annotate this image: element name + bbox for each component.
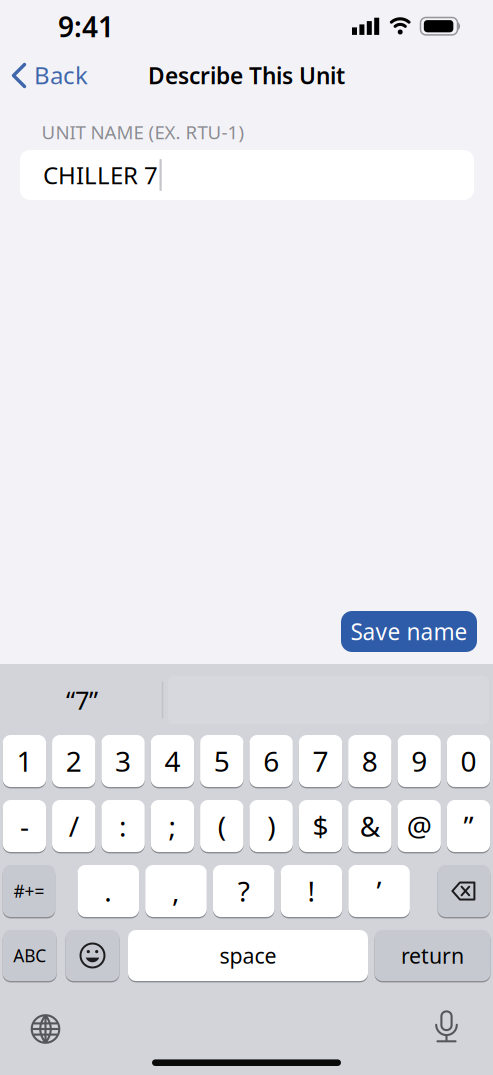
button[interactable]: Dictation: [424, 1005, 468, 1049]
staticText: $: [312, 807, 328, 845]
staticText: ”: [464, 807, 474, 845]
staticText: !: [307, 872, 315, 910]
staticText: return: [401, 941, 464, 970]
staticText: Save name: [350, 616, 467, 646]
button[interactable]: Back: [10, 57, 102, 93]
button[interactable]: space: [128, 930, 368, 981]
staticText: .: [104, 872, 112, 910]
staticText: ’: [377, 872, 382, 910]
staticText: 1: [16, 742, 32, 780]
staticText: ABC: [13, 944, 46, 967]
staticText: (: [218, 807, 226, 845]
staticText: 3: [115, 742, 131, 780]
staticText: ?: [238, 872, 250, 910]
button[interactable]: return: [374, 930, 490, 981]
button[interactable]: 6: [249, 735, 293, 787]
button[interactable]: &: [348, 800, 391, 852]
button[interactable]: ”: [447, 800, 490, 852]
staticText: 6: [263, 742, 279, 780]
button[interactable]: -: [3, 800, 46, 852]
button[interactable]: 9: [397, 735, 441, 787]
button[interactable]: Suggestion 7: [22, 676, 142, 724]
button[interactable]: Delete: [437, 865, 490, 917]
staticText: ;: [168, 807, 176, 845]
staticText: 8: [362, 742, 378, 780]
staticText: &: [360, 807, 380, 845]
staticText: ,: [172, 872, 180, 910]
staticText: Back: [34, 59, 88, 91]
button[interactable]: !: [281, 865, 342, 917]
button[interactable]: ?: [213, 865, 274, 917]
button[interactable]: ABC: [3, 930, 57, 981]
button[interactable]: 2: [52, 735, 95, 787]
button[interactable]: Save name: [341, 611, 477, 652]
staticText: /: [69, 807, 79, 845]
button[interactable]: 5: [200, 735, 243, 787]
staticText: space: [219, 941, 276, 970]
staticText: ): [267, 807, 275, 845]
button[interactable]: 3: [101, 735, 145, 787]
button[interactable]: 0: [447, 735, 490, 787]
staticText: 7: [312, 742, 328, 780]
button[interactable]: /: [52, 800, 95, 852]
staticText: #+=: [13, 879, 44, 902]
staticText: CHILLER 7: [43, 159, 158, 191]
button[interactable]: 4: [151, 735, 194, 787]
staticText: 5: [214, 742, 230, 780]
staticText: 4: [164, 742, 180, 780]
staticText: :: [119, 807, 127, 845]
button[interactable]: .: [77, 865, 139, 917]
button[interactable]: @: [397, 800, 441, 852]
staticText: -: [20, 807, 29, 845]
button[interactable]: #+=: [3, 865, 55, 917]
staticText: 9: [411, 742, 427, 780]
button[interactable]: ): [249, 800, 293, 852]
button[interactable]: Next keyboard: [23, 1007, 67, 1051]
button[interactable]: ’: [348, 865, 410, 917]
button[interactable]: 1: [3, 735, 46, 787]
button[interactable]: Unit name text field: [20, 150, 474, 200]
staticText: Describe This Unit: [148, 60, 345, 90]
button[interactable]: $: [299, 800, 342, 852]
button[interactable]: 8: [348, 735, 391, 787]
button[interactable]: Emoji: [65, 930, 119, 981]
staticText: 9:41: [58, 8, 114, 45]
staticText: @: [407, 807, 432, 845]
button[interactable]: :: [101, 800, 145, 852]
button[interactable]: ;: [151, 800, 194, 852]
button[interactable]: 7: [299, 735, 342, 787]
button[interactable]: (: [200, 800, 243, 852]
button[interactable]: ,: [145, 865, 207, 917]
staticText: UNIT NAME (EX. RTU-1): [41, 120, 244, 144]
staticText: 0: [461, 742, 477, 780]
staticText: “7”: [66, 683, 98, 717]
staticText: 2: [66, 742, 82, 780]
